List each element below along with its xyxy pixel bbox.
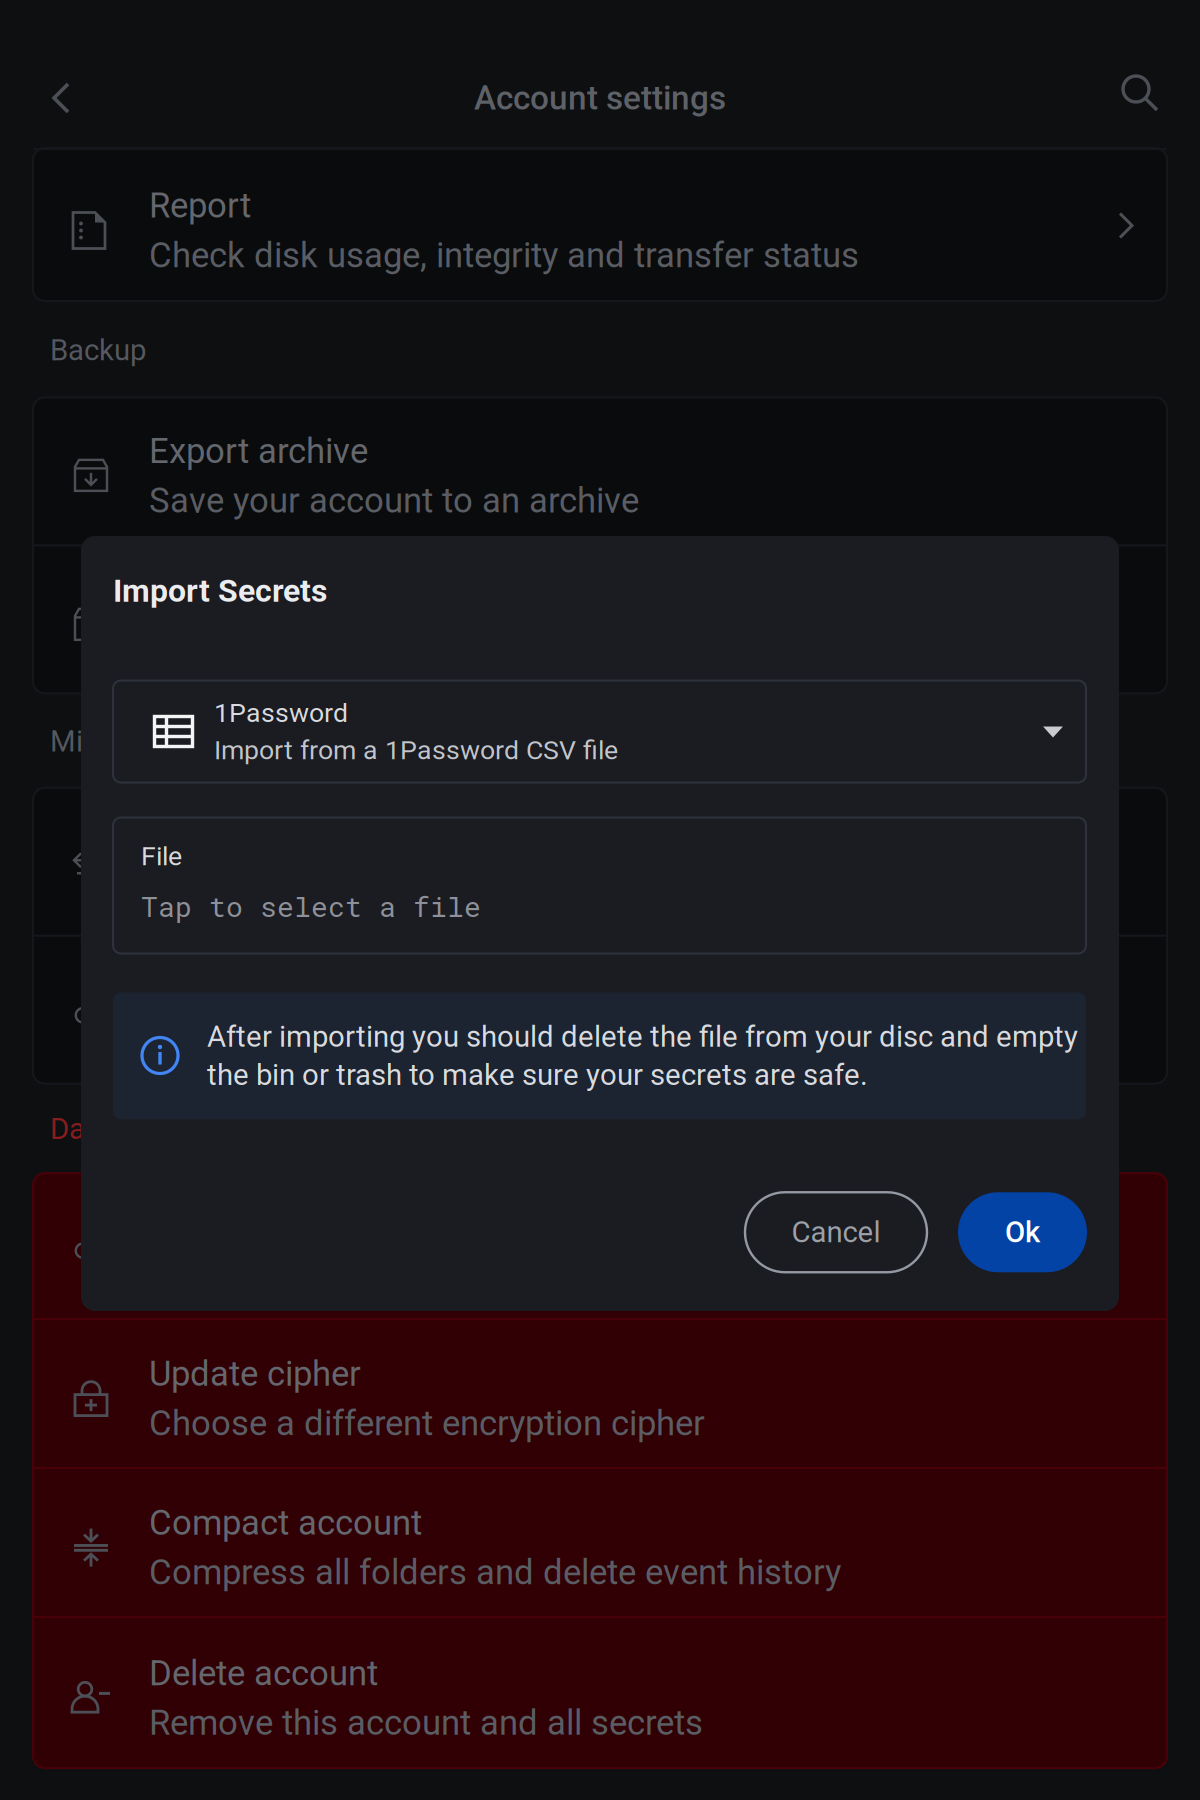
button[interactable]: Search: [1094, 0, 1200, 148]
staticText: Ok: [1005, 1215, 1040, 1249]
staticText: Move this account to another server: [149, 871, 703, 911]
staticText: Compact account: [149, 1502, 422, 1543]
button[interactable]: 1Password: [113, 680, 1086, 782]
staticText: File: [141, 840, 182, 872]
staticText: Danger zone: [50, 1112, 213, 1146]
staticText: Cancel: [791, 1215, 880, 1249]
button[interactable]: Ok: [958, 1192, 1087, 1272]
staticText: Tap to select a file: [141, 888, 481, 924]
button[interactable]: Compact account: [33, 1469, 1167, 1616]
staticText: Account settings: [474, 78, 726, 118]
staticText: Choose a different encryption cipher: [149, 1403, 705, 1444]
staticText: Export archive: [149, 431, 368, 471]
button[interactable]: Export archive: [33, 397, 1167, 544]
button[interactable]: Change password: [33, 937, 1167, 1084]
staticText: Remove this account and all secrets: [149, 1703, 703, 1743]
button[interactable]: Report: [33, 150, 1167, 301]
button[interactable]: Move account: [33, 788, 1167, 935]
staticText: Delete account: [149, 1653, 378, 1694]
button[interactable]: Update cipher: [33, 1320, 1167, 1467]
staticText: Report: [149, 185, 251, 226]
staticText: After importing you should delete the fi…: [207, 1019, 1078, 1092]
staticText: Backup: [50, 333, 146, 367]
button[interactable]: Delete account: [33, 1618, 1167, 1768]
button[interactable]: Cancel: [745, 1192, 927, 1272]
staticText: Update cipher: [149, 1353, 361, 1394]
staticText: Change password: [149, 970, 426, 1011]
button[interactable]: Change key: [33, 1173, 1167, 1318]
staticText: Migration: [50, 724, 174, 759]
staticText: Move account: [149, 821, 367, 862]
staticText: Save your account to an archive: [149, 480, 639, 521]
staticText: Check disk usage, integrity and transfer…: [149, 235, 859, 276]
button[interactable]: File: [113, 817, 1086, 953]
staticText: Set a new password for this account: [149, 1020, 710, 1060]
staticText: Import from a 1Password CSV file: [214, 734, 618, 766]
button[interactable]: Import secrets: [33, 546, 1167, 693]
staticText: Import secrets: [149, 580, 372, 620]
staticText: Import Secrets: [113, 572, 327, 609]
staticText: Compress all folders and delete event hi…: [149, 1552, 841, 1593]
staticText: 1Password: [214, 697, 348, 728]
button[interactable]: Back: [0, 0, 106, 148]
